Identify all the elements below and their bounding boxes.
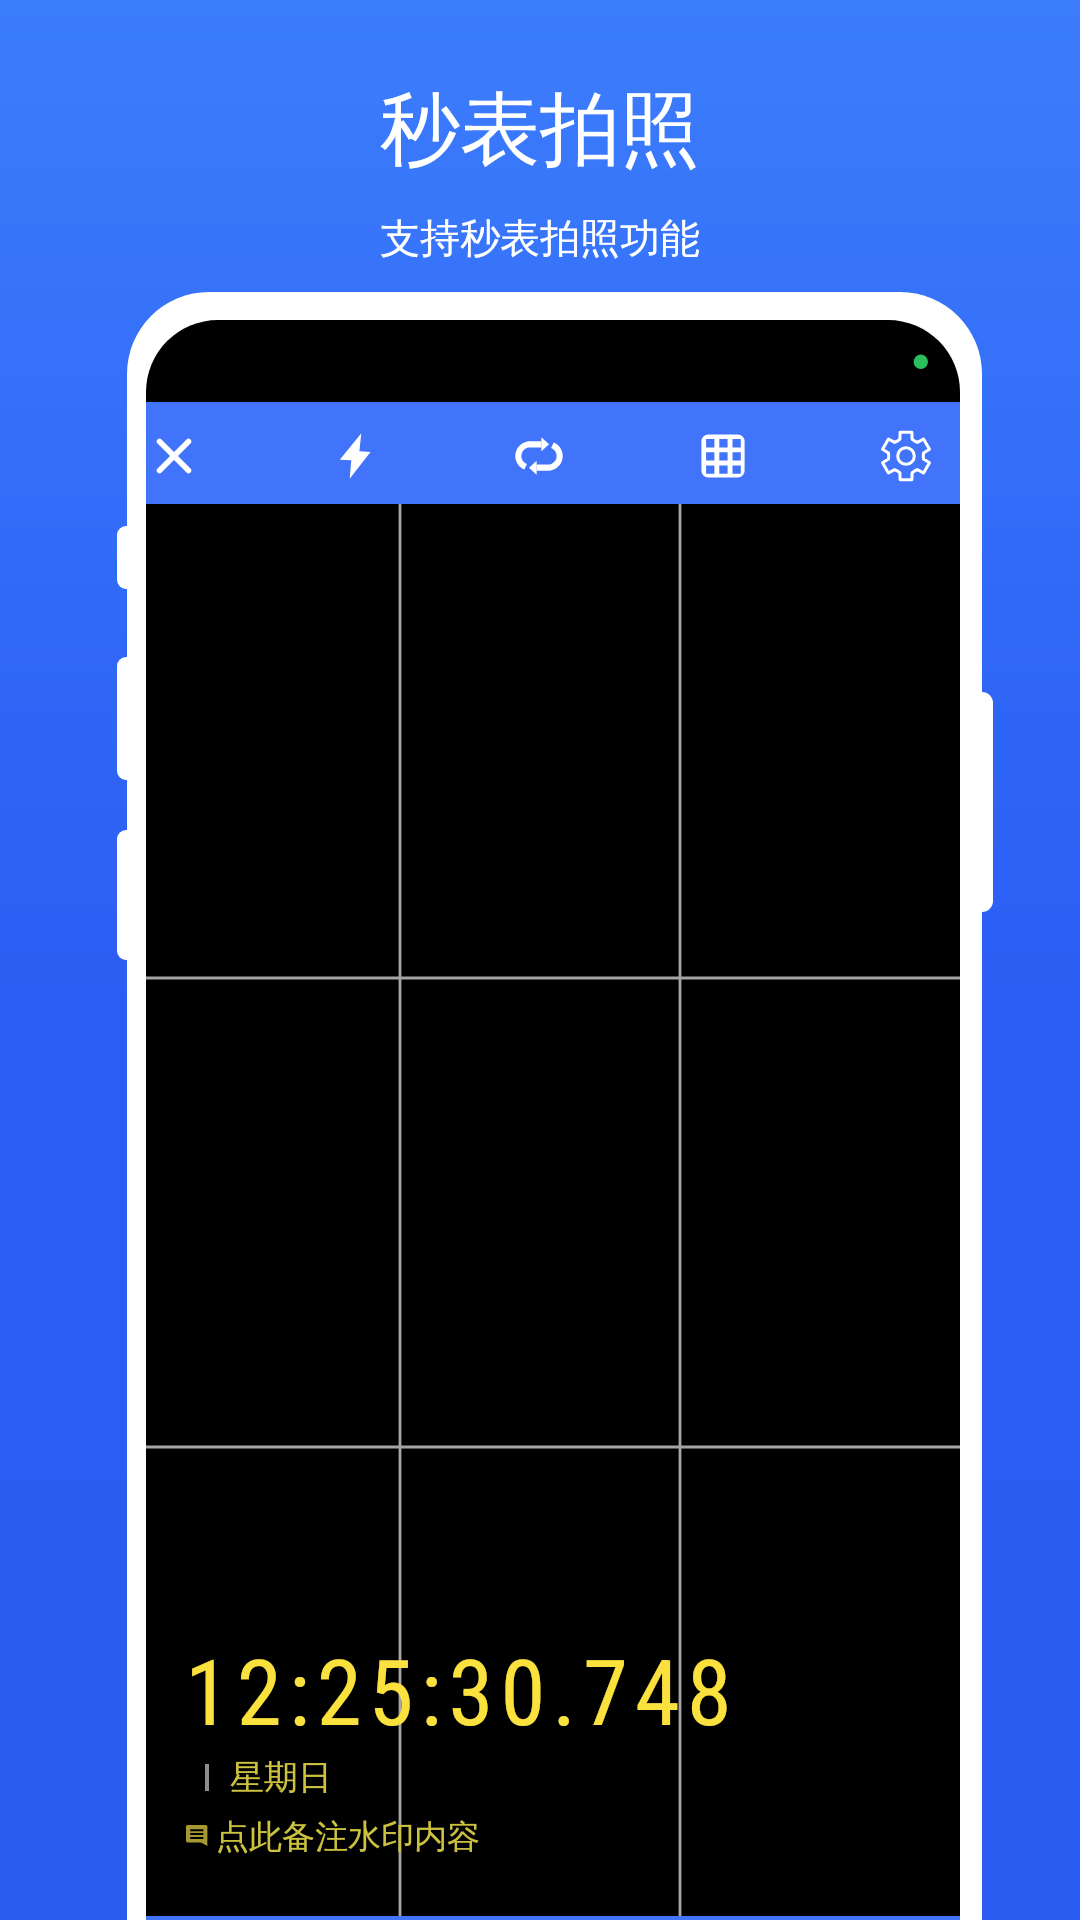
staticText: 支持秒表拍照功能 xyxy=(380,213,700,263)
staticText: 点此备注水印内容 xyxy=(216,1816,480,1858)
button[interactable]: Grid xyxy=(677,410,769,502)
staticText: 星期日 xyxy=(230,1756,332,1799)
button[interactable]: Settings xyxy=(860,410,952,502)
button[interactable]: Flash xyxy=(309,410,401,502)
button[interactable]: 点此备注水印内容 xyxy=(182,1812,482,1858)
button[interactable]: Switch camera xyxy=(493,410,585,502)
staticText: 12:25:30.748 xyxy=(185,1641,739,1748)
staticText: 秒表拍照 xyxy=(380,80,700,181)
button[interactable]: Close xyxy=(146,410,220,502)
